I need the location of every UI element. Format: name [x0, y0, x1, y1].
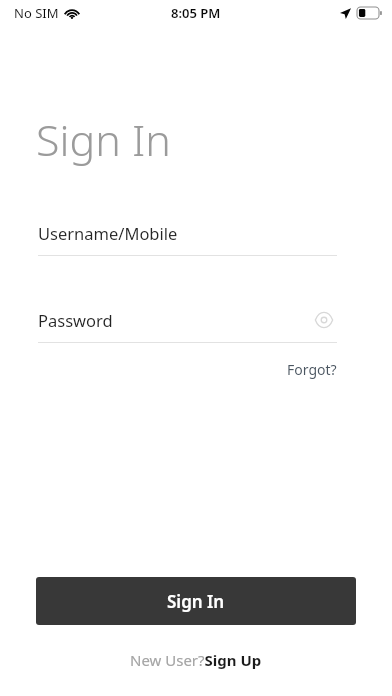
- button[interactable]: Show password: [311, 307, 337, 333]
- button[interactable]: Sign In: [36, 577, 356, 625]
- staticText: Sign In: [167, 590, 225, 613]
- staticText: 8:05 PM: [171, 4, 221, 22]
- button[interactable]: New User?Sign Up: [130, 650, 262, 670]
- staticText: New User?Sign Up: [130, 650, 262, 670]
- staticText: Username/Mobile: [38, 222, 178, 244]
- staticText: Forgot?: [287, 360, 337, 379]
- staticText: Password: [38, 309, 113, 331]
- staticText: No SIM: [14, 4, 59, 22]
- staticText: Sign In: [36, 110, 171, 169]
- button[interactable]: Forgot?: [265, 356, 337, 382]
